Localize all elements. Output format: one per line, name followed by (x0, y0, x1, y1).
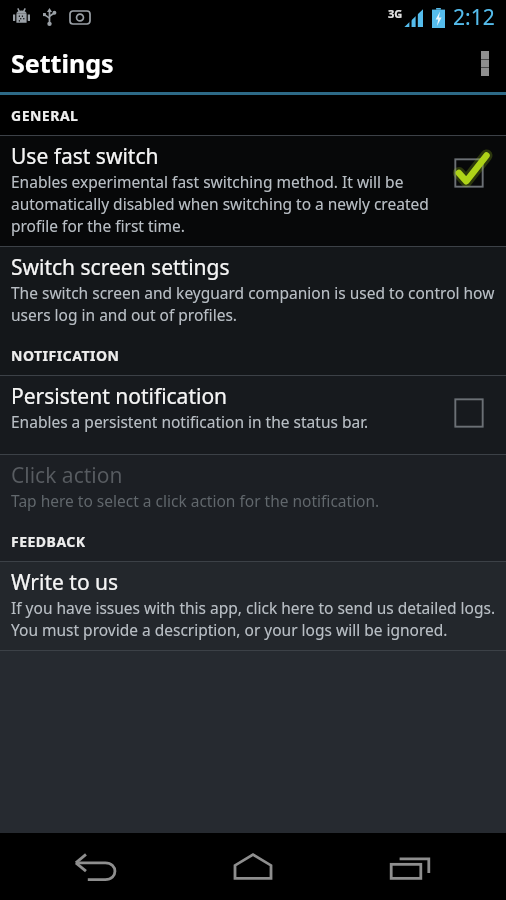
staticText: If you have issues with this app, click … (11, 597, 500, 640)
staticText: Settings (11, 46, 114, 80)
staticText: Tap here to select a click action for th… (11, 490, 380, 511)
staticText: NOTIFICATION (11, 346, 120, 365)
staticText: Use fast switch (11, 142, 159, 171)
staticText: Persistent notification (11, 382, 228, 411)
button[interactable]: Switch screen settings (0, 247, 506, 335)
staticText: 3G (388, 6, 403, 21)
button[interactable]: More options (464, 34, 506, 92)
button[interactable]: Persistent notification (0, 376, 506, 454)
staticText: Enables a persistent notification in the… (11, 411, 369, 432)
staticText: Click action (11, 461, 123, 490)
button[interactable]: Back (37, 833, 157, 900)
button[interactable]: Home (193, 833, 313, 900)
staticText: Write to us (11, 568, 119, 597)
staticText: The switch screen and keyguard companion… (11, 282, 500, 325)
button[interactable]: Click action (0, 455, 506, 521)
staticText: FEEDBACK (11, 532, 86, 551)
button[interactable]: Write to us (0, 562, 506, 650)
staticText: Switch screen settings (11, 253, 230, 282)
staticText: GENERAL (11, 106, 79, 125)
button[interactable]: Use fast switch (0, 136, 506, 246)
staticText: Enables experimental fast switching meth… (11, 171, 438, 236)
staticText: 2:12 (453, 3, 495, 32)
button[interactable]: Recent apps (350, 833, 470, 900)
